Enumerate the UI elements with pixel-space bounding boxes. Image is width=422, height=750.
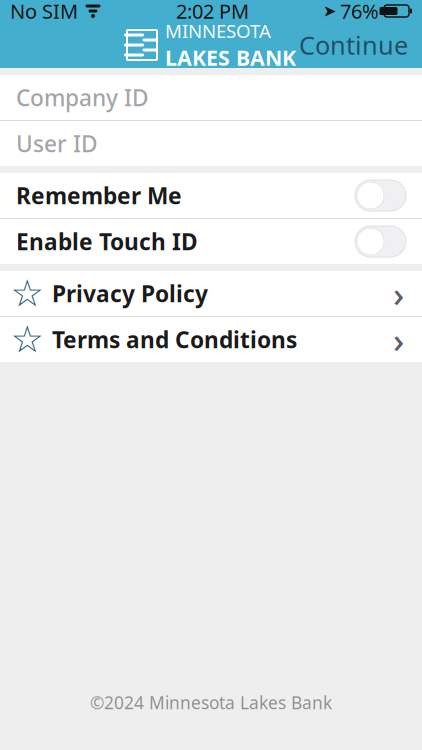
button[interactable]: Continue: [285, 22, 422, 68]
staticText: Company ID: [16, 82, 149, 112]
staticText: ☆: [10, 318, 43, 361]
staticText: 2:02 PM: [176, 0, 249, 24]
staticText: ☆: [10, 272, 43, 315]
staticText: Remember Me: [16, 180, 182, 210]
button[interactable]: Company ID: [0, 75, 422, 120]
staticText: ➤: [323, 2, 336, 20]
staticText: LAKES BANK: [165, 43, 296, 71]
staticText: No SIM: [10, 0, 78, 24]
staticText: 76%: [340, 0, 379, 24]
staticText: ©2024 Minnesota Lakes Bank: [90, 691, 332, 714]
staticText: Enable Touch ID: [16, 226, 198, 256]
button[interactable]: ☆: [0, 317, 422, 362]
button[interactable]: Remember Me: [0, 173, 422, 218]
staticText: User ID: [16, 128, 98, 158]
staticText: Continue: [299, 28, 408, 62]
staticText: ›: [393, 316, 404, 362]
staticText: MINNESOTA: [165, 18, 271, 43]
button[interactable]: ☆: [0, 271, 422, 316]
staticText: Privacy Policy: [52, 278, 208, 308]
staticText: ›: [393, 270, 404, 316]
staticText: Terms and Conditions: [52, 324, 297, 354]
button[interactable]: Enable Touch ID: [0, 219, 422, 264]
button[interactable]: User ID: [0, 121, 422, 166]
